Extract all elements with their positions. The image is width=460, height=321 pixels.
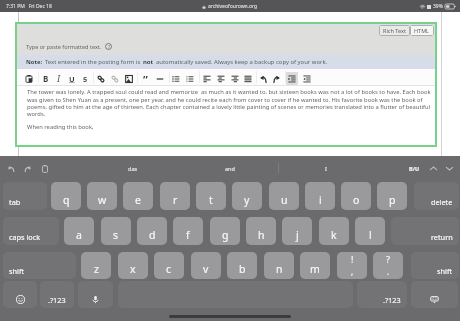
staticText: The tower was lonely. A trapped soul cou… [27,88,431,117]
button[interactable]: Hide keyboard [411,281,458,308]
button[interactable]: m [300,252,330,279]
button[interactable]: u [269,182,299,210]
staticText: l [369,228,372,242]
button[interactable]: k [319,217,349,245]
button[interactable]: Link [95,72,107,85]
staticText: ? [386,253,390,265]
button[interactable]: a [64,217,94,245]
staticText: h [258,228,265,242]
button[interactable]: p [377,182,407,210]
button[interactable]: z [81,252,111,279]
button[interactable]: Strikethrough [79,72,91,85]
button[interactable]: f [173,217,203,245]
button[interactable]: Paste [39,163,50,174]
staticText: I [325,165,327,172]
button[interactable]: e [123,182,153,210]
button[interactable]: w [87,182,117,210]
button[interactable]: Underline [66,72,78,85]
button[interactable]: B/U [407,165,422,172]
staticText: Text entered in the posting form is [45,58,141,66]
staticText: 39% [433,3,443,10]
button[interactable]: i [305,182,335,210]
button[interactable]: Previous [427,162,439,174]
staticText: shift [437,266,453,276]
button[interactable]: Italic [53,72,65,85]
button[interactable]: shift [3,252,76,279]
button[interactable]: Bullet list [170,72,182,85]
button[interactable]: v [191,252,221,279]
button[interactable]: l [355,217,385,245]
button[interactable]: Rich Text [379,25,410,36]
button[interactable]: n [264,252,294,279]
button[interactable]: Help [105,43,112,50]
button[interactable]: Undo [257,72,269,85]
button[interactable]: Unlink [109,72,121,85]
button[interactable]: Align center [215,72,227,85]
button[interactable]: t [196,182,226,210]
staticText: k [331,228,337,242]
button[interactable]: Numbered list [184,72,196,85]
button[interactable]: c [154,252,184,279]
button[interactable]: HTML [410,25,434,36]
button[interactable]: h [246,217,276,245]
button[interactable]: Paste [23,72,35,85]
button[interactable]: Outdent [301,72,313,85]
button[interactable]: r [160,182,190,210]
button[interactable]: Undo [5,163,16,174]
button[interactable]: o [341,182,371,210]
button[interactable]: Image [123,72,135,85]
button[interactable]: delete [414,182,459,210]
button[interactable]: Indent [286,72,298,85]
staticText: a [76,228,82,242]
staticText: m [310,262,320,276]
staticText: I [57,73,61,85]
button[interactable]: .?123 [357,281,407,308]
staticText: shift [9,266,25,276]
button[interactable]: return [391,217,459,245]
button[interactable]: Align right [229,72,241,85]
staticText: r [173,193,178,207]
button[interactable]: x [118,252,148,279]
button[interactable]: ? [373,252,403,279]
staticText: ” [143,72,148,85]
button[interactable]: b [227,252,257,279]
staticText: Rich Text [383,27,406,34]
button[interactable]: q [51,182,81,210]
button[interactable]: Horizontal rule [154,72,166,85]
button[interactable]: I [298,156,354,180]
button[interactable]: shift [411,252,459,279]
staticText: c [166,262,172,276]
button[interactable]: Blockquote [139,72,151,85]
button[interactable]: Next [443,162,455,174]
button[interactable]: Emoji [3,281,37,308]
staticText: s [113,228,119,242]
button[interactable]: caps lock [3,217,59,245]
button[interactable]: Align left [201,72,213,85]
staticText: o [353,193,360,207]
button[interactable]: and [202,156,258,180]
button[interactable]: ! [337,252,367,279]
staticText: HTML [414,27,430,34]
button[interactable]: g [210,217,240,245]
button[interactable]: d [137,217,167,245]
button[interactable]: s [101,217,131,245]
button[interactable]: tab [3,182,47,210]
button[interactable]: Redo [271,72,283,85]
button[interactable]: .?123 [40,281,74,308]
staticText: .?123 [48,295,66,305]
staticText: t [209,193,213,207]
button[interactable]: Dictate [78,281,113,308]
button[interactable]: Justify [242,72,254,85]
staticText: z [94,262,99,276]
staticText: and [225,165,235,172]
staticText: u [281,193,288,207]
button[interactable]: Bold [40,72,52,85]
staticText: When reading this book, [27,123,94,131]
button[interactable]: das [105,156,161,180]
button[interactable]: j [282,217,312,245]
staticText: e [135,193,141,207]
staticText: tab [9,197,21,207]
button[interactable]: Redo [22,163,33,174]
button[interactable]: y [232,182,262,210]
